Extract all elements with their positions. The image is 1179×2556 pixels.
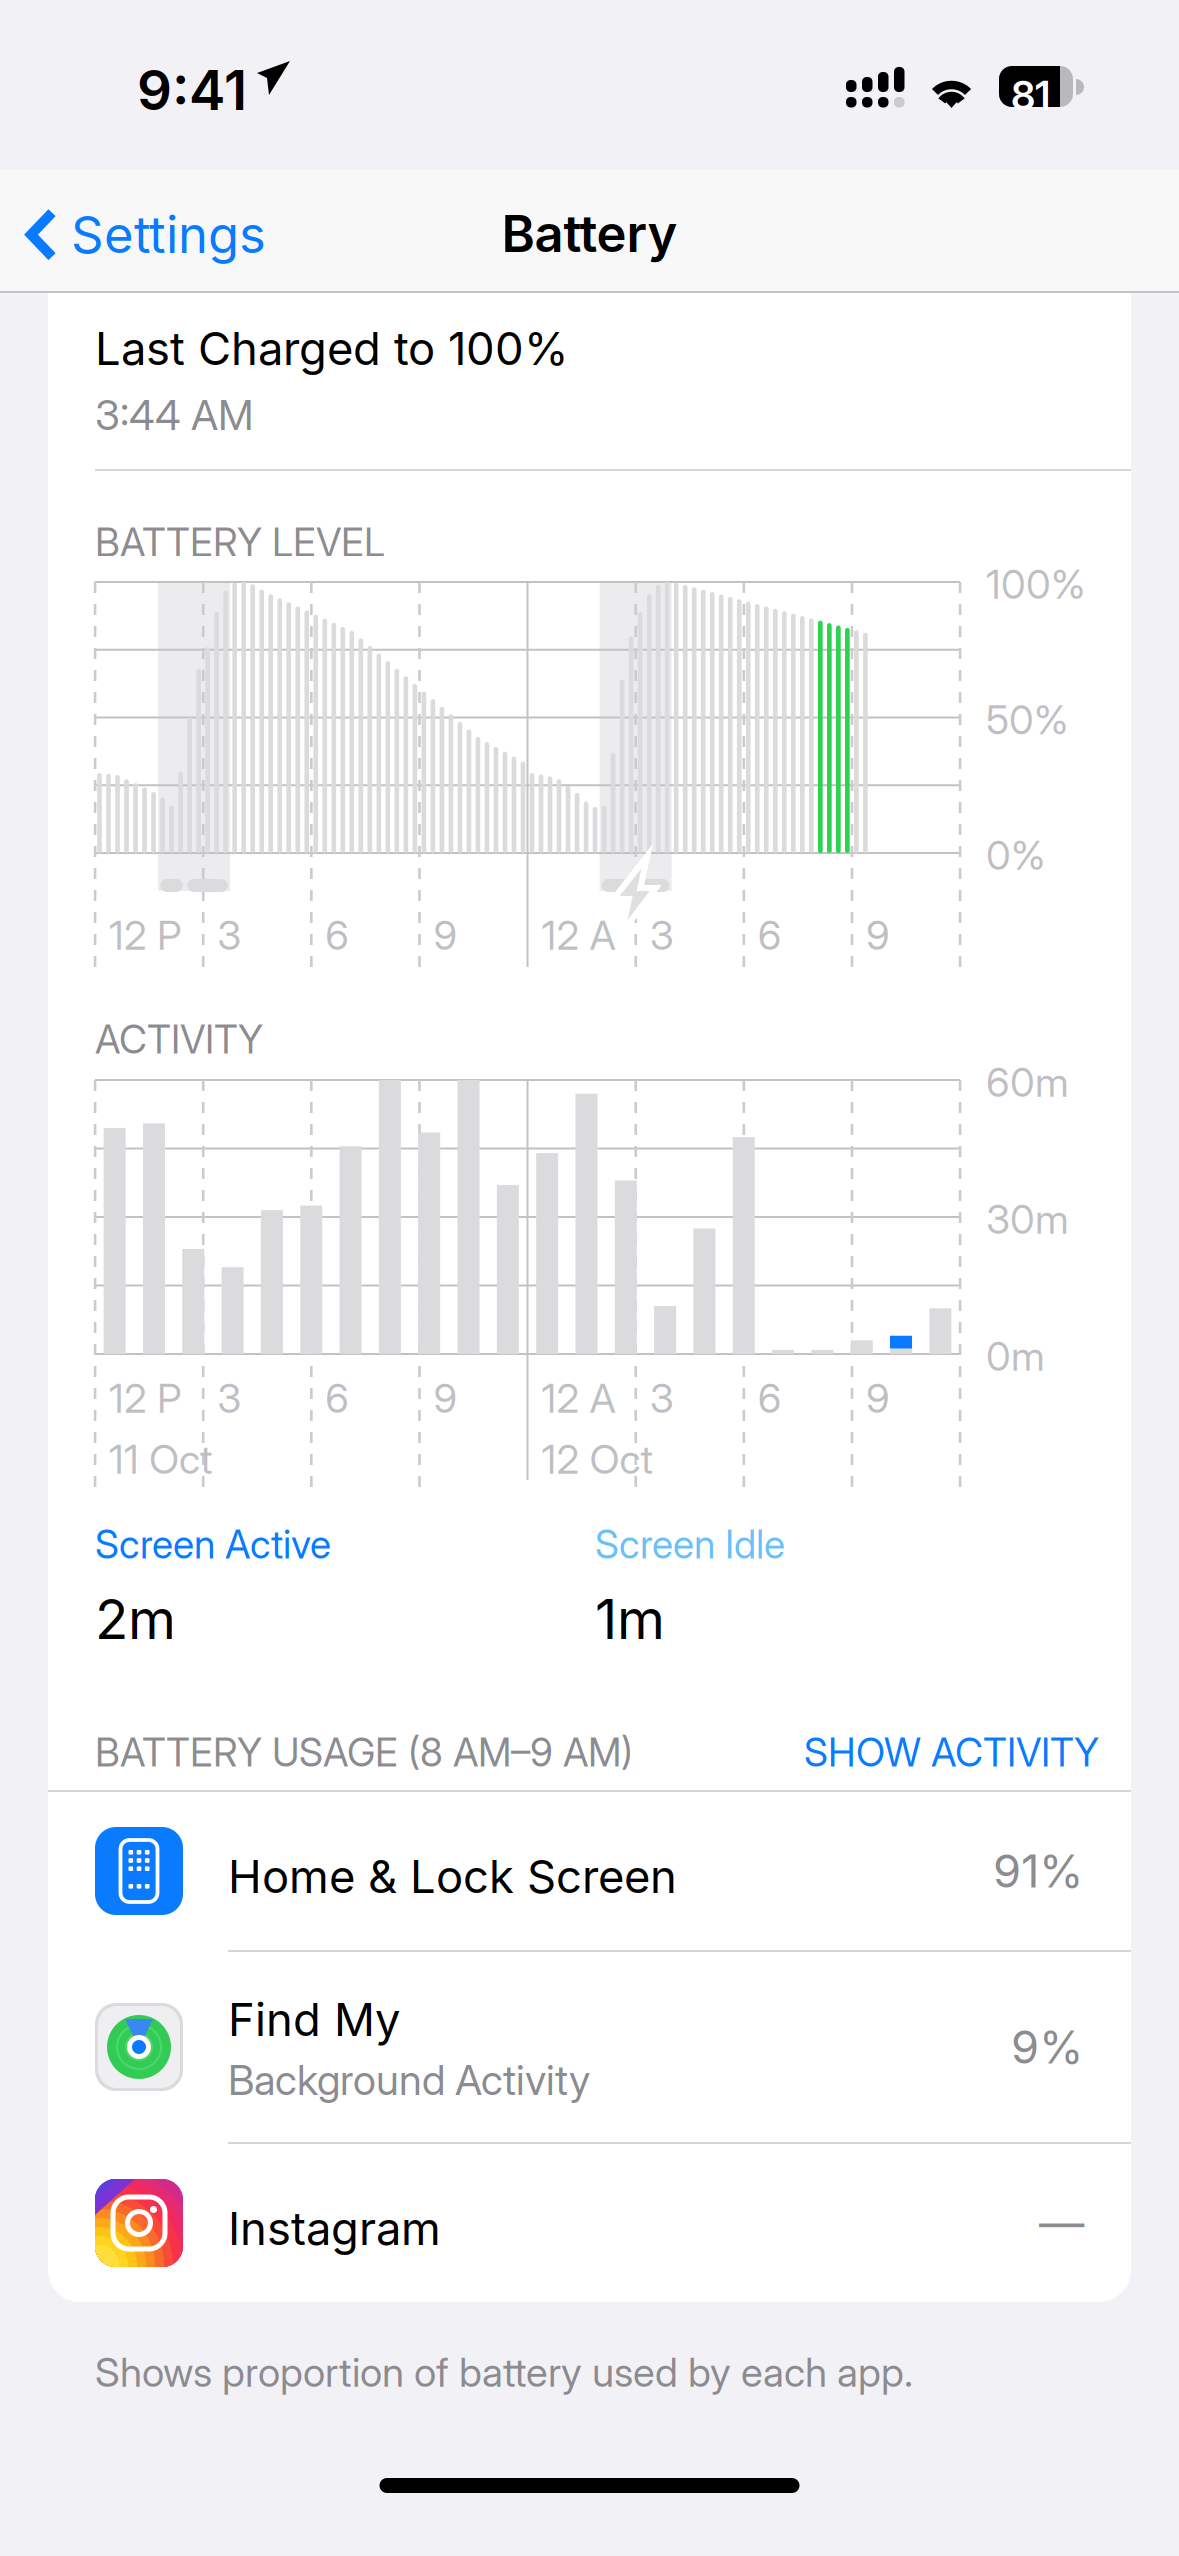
staticText: 12 A	[541, 911, 615, 959]
staticText: 11 Oct	[109, 1435, 213, 1483]
staticText: Instagram	[228, 2201, 441, 2256]
staticText: Screen Idle	[595, 1521, 785, 1568]
staticText: 50%	[986, 695, 1068, 744]
staticText: —	[1039, 2196, 1084, 2250]
staticText: 9:41	[137, 57, 247, 123]
staticText: 9	[866, 1374, 890, 1422]
staticText: Find My	[228, 1992, 400, 2047]
button[interactable]: SHOW ACTIVITY	[790, 1719, 1113, 1786]
staticText: ACTIVITY	[95, 1016, 263, 1063]
staticText: 2m	[95, 1586, 176, 1652]
staticText: 30m	[986, 1195, 1069, 1243]
staticText: 81	[1011, 71, 1050, 119]
staticText: 9	[433, 911, 457, 959]
button[interactable]: Home & Lock Screen	[48, 1792, 1131, 1950]
staticText: 3	[650, 911, 674, 959]
staticText: 1m	[595, 1586, 665, 1652]
staticText: 3	[217, 1374, 241, 1422]
staticText: 6	[758, 1374, 782, 1422]
staticText: 3:44 AM	[95, 390, 254, 440]
staticText: 12 A	[541, 1374, 615, 1422]
button[interactable]: Settings	[0, 186, 290, 283]
staticText: 0%	[986, 831, 1045, 879]
staticText: 6	[325, 911, 349, 959]
staticText: 12 P	[109, 1374, 182, 1422]
staticText: 6	[325, 1374, 349, 1422]
staticText: Background Activity	[228, 2055, 590, 2105]
staticText: 3	[217, 911, 241, 959]
staticText: 6	[758, 911, 782, 959]
staticText: 12 P	[109, 911, 182, 959]
staticText: Settings	[71, 204, 266, 265]
staticText: BATTERY USAGE (8 AM–9 AM)	[95, 1729, 633, 1776]
staticText: Screen Active	[95, 1521, 331, 1568]
staticText: 3	[650, 1374, 674, 1422]
staticText: Home & Lock Screen	[228, 1849, 677, 1904]
staticText: BATTERY LEVEL	[95, 519, 385, 566]
button[interactable]: Instagram	[48, 2144, 1131, 2302]
staticText: SHOW ACTIVITY	[804, 1729, 1099, 1776]
staticText: 60m	[986, 1058, 1069, 1106]
staticText: 100%	[986, 560, 1085, 608]
button[interactable]: Find My	[48, 1952, 1131, 2142]
staticText: 9	[433, 1374, 457, 1422]
staticText: 0m	[986, 1332, 1045, 1380]
staticText: 9%	[1011, 2020, 1084, 2074]
staticText: Last Charged to 100%	[95, 321, 569, 376]
staticText: 91%	[993, 1844, 1084, 1898]
staticText: Shows proportion of battery used by each…	[95, 2348, 913, 2396]
staticText: 9	[866, 911, 890, 959]
staticText: 12 Oct	[541, 1435, 653, 1483]
staticText: Battery	[501, 203, 677, 264]
